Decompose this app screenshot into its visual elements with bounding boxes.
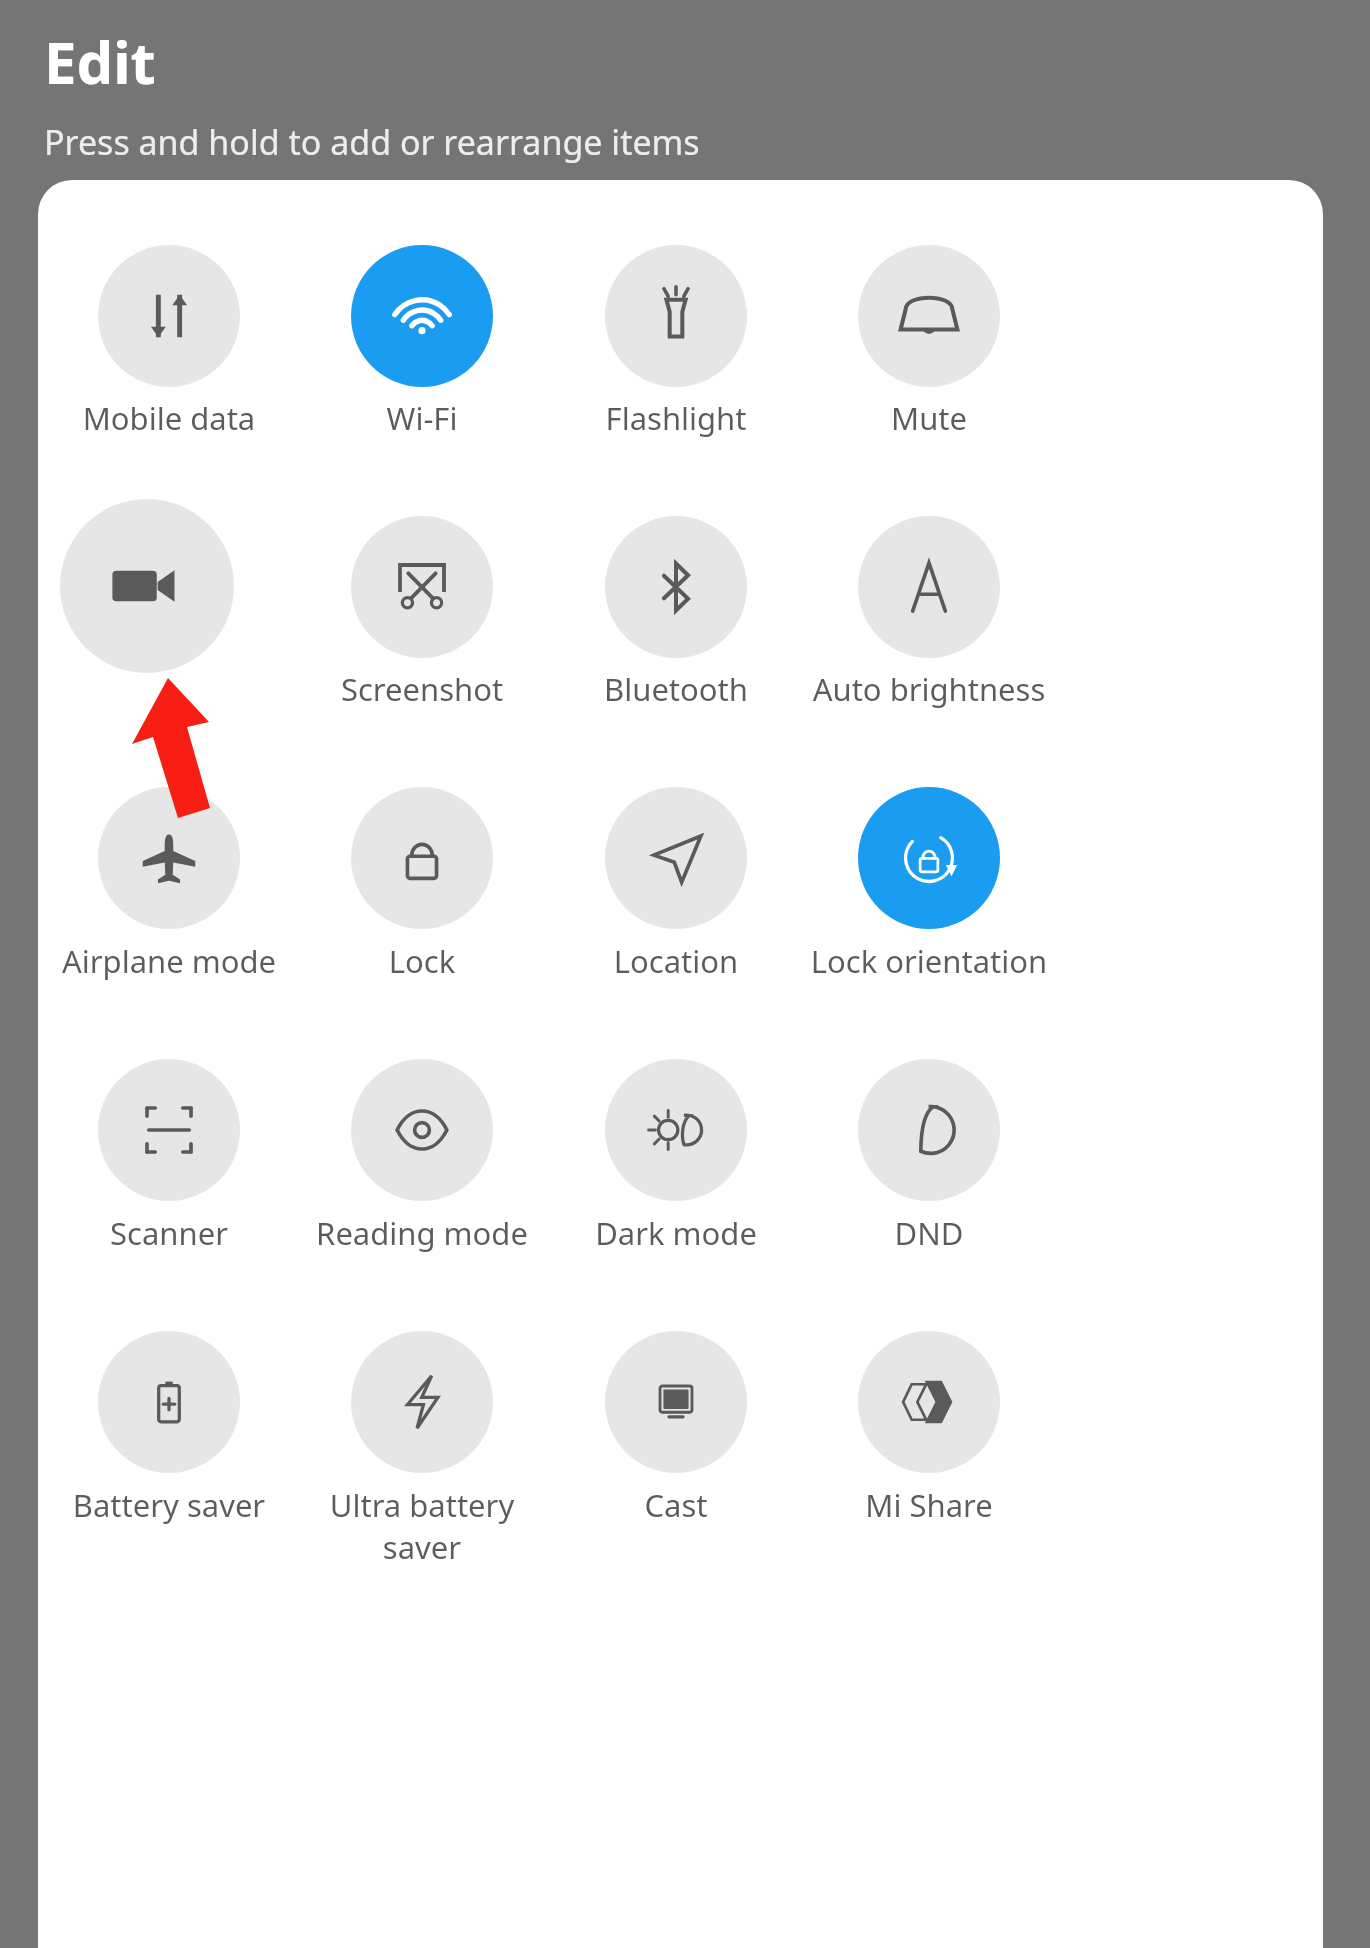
button[interactable] xyxy=(858,516,1000,658)
button[interactable] xyxy=(605,1331,747,1473)
staticText: Cast xyxy=(551,1484,801,1526)
button[interactable] xyxy=(351,245,493,387)
button[interactable] xyxy=(98,1059,240,1201)
staticText: Screenshot xyxy=(297,668,547,710)
button[interactable] xyxy=(858,1331,1000,1473)
staticText: Auto brightness xyxy=(804,668,1054,710)
staticText: Lock xyxy=(297,940,547,982)
staticText: Lock orientation xyxy=(804,940,1054,982)
button[interactable] xyxy=(605,516,747,658)
staticText: Wi-Fi xyxy=(297,397,547,439)
staticText: Battery saver xyxy=(44,1484,294,1526)
button[interactable] xyxy=(351,516,493,658)
button[interactable] xyxy=(858,245,1000,387)
button[interactable] xyxy=(351,787,493,929)
staticText: Mobile data xyxy=(44,397,294,439)
button[interactable] xyxy=(605,1059,747,1201)
staticText: Mi Share xyxy=(804,1484,1054,1526)
staticText: Airplane mode xyxy=(44,940,294,982)
button[interactable] xyxy=(351,1059,493,1201)
button[interactable]: Record screen xyxy=(60,499,234,673)
button[interactable] xyxy=(98,1331,240,1473)
staticText: Ultra battery saver xyxy=(297,1484,547,1568)
button[interactable] xyxy=(858,787,1000,929)
staticText: Flashlight xyxy=(551,397,801,439)
button[interactable] xyxy=(98,245,240,387)
staticText: Location xyxy=(551,940,801,982)
staticText: Scanner xyxy=(44,1212,294,1254)
staticText: Mute xyxy=(804,397,1054,439)
staticText: Bluetooth xyxy=(551,668,801,710)
staticText: Dark mode xyxy=(551,1212,801,1254)
button[interactable] xyxy=(858,1059,1000,1201)
button[interactable] xyxy=(351,1331,493,1473)
button[interactable] xyxy=(98,787,240,929)
staticText: Edit xyxy=(44,22,156,101)
staticText: Reading mode xyxy=(297,1212,547,1254)
button[interactable] xyxy=(605,787,747,929)
staticText: DND xyxy=(804,1212,1054,1254)
staticText: Press and hold to add or rearrange items xyxy=(44,119,700,165)
button[interactable] xyxy=(605,245,747,387)
